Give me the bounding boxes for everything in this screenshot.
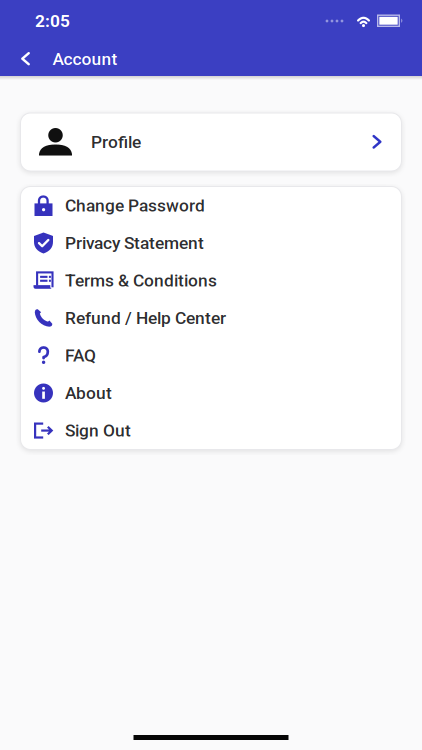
- staticText: Sign Out: [65, 420, 131, 441]
- button[interactable]: Refund / Help Center: [20, 299, 401, 337]
- staticText: About: [65, 383, 112, 403]
- button[interactable]: Profile: [20, 113, 401, 171]
- staticText: Account: [52, 49, 117, 69]
- staticText: Privacy Statement: [65, 233, 204, 253]
- button[interactable]: Back: [0, 42, 30, 76]
- staticText: 2:05: [35, 11, 70, 31]
- button[interactable]: Sign Out: [20, 412, 401, 449]
- staticText: Terms & Conditions: [65, 270, 217, 291]
- staticText: Profile: [91, 132, 141, 152]
- staticText: Change Password: [65, 195, 205, 216]
- staticText: Refund / Help Center: [65, 308, 226, 328]
- button[interactable]: FAQ: [20, 337, 401, 374]
- button[interactable]: About: [20, 374, 401, 412]
- button[interactable]: Terms & Conditions: [20, 262, 401, 299]
- button[interactable]: Change Password: [20, 187, 401, 224]
- button[interactable]: Privacy Statement: [20, 224, 401, 262]
- staticText: FAQ: [65, 345, 96, 366]
